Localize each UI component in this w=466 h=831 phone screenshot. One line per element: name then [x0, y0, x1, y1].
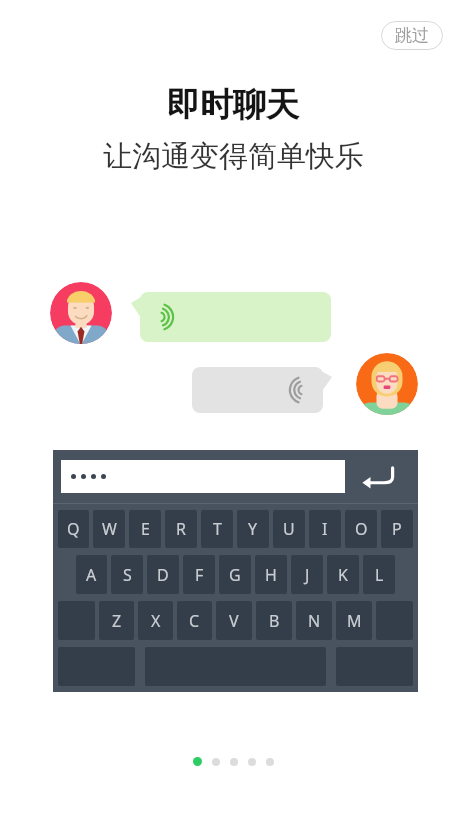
- button[interactable]: B: [256, 601, 292, 640]
- staticText: X: [151, 610, 161, 632]
- button[interactable]: X: [138, 601, 173, 640]
- staticText: A: [86, 564, 97, 586]
- button[interactable]: K: [327, 555, 359, 594]
- button[interactable]: D: [147, 555, 179, 594]
- button[interactable]: I: [309, 510, 341, 548]
- button[interactable]: S: [111, 555, 143, 594]
- button[interactable]: W: [93, 510, 125, 548]
- staticText: B: [269, 610, 280, 632]
- button[interactable]: C: [177, 601, 212, 640]
- button[interactable]: Z: [99, 601, 134, 640]
- staticText: W: [102, 518, 117, 540]
- button[interactable]: T: [201, 510, 233, 548]
- button[interactable]: L: [363, 555, 395, 594]
- button[interactable]: U: [273, 510, 305, 548]
- button[interactable]: [71, 460, 345, 493]
- button[interactable]: R: [165, 510, 197, 548]
- staticText: L: [375, 564, 384, 586]
- staticText: C: [189, 610, 200, 632]
- button[interactable]: G: [219, 555, 251, 594]
- staticText: 让沟通变得简单快乐: [103, 138, 364, 175]
- staticText: E: [141, 518, 150, 540]
- staticText: 跳过: [395, 25, 429, 46]
- button[interactable]: V: [216, 601, 252, 640]
- staticText: G: [229, 564, 241, 586]
- staticText: V: [229, 610, 239, 632]
- staticText: N: [308, 610, 321, 632]
- staticText: R: [176, 518, 186, 540]
- button[interactable]: A: [76, 555, 107, 594]
- staticText: K: [338, 564, 348, 586]
- staticText: J: [305, 564, 310, 586]
- staticText: Z: [112, 610, 122, 632]
- button[interactable]: H: [255, 555, 287, 594]
- button[interactable]: M: [336, 601, 372, 640]
- button[interactable]: P: [381, 510, 413, 548]
- button[interactable]: F: [183, 555, 215, 594]
- staticText: M: [347, 610, 362, 632]
- staticText: Y: [248, 518, 258, 540]
- button[interactable]: J: [291, 555, 323, 594]
- staticText: O: [355, 518, 368, 540]
- staticText: H: [265, 564, 277, 586]
- staticText: 即时聊天: [167, 84, 299, 126]
- button[interactable]: Send: [345, 450, 410, 503]
- staticText: Q: [67, 518, 80, 540]
- staticText: S: [123, 564, 132, 586]
- staticText: D: [157, 564, 169, 586]
- staticText: U: [283, 518, 295, 540]
- staticText: P: [392, 518, 402, 540]
- button[interactable]: N: [296, 601, 332, 640]
- staticText: F: [195, 564, 204, 586]
- button[interactable]: E: [129, 510, 161, 548]
- button[interactable]: O: [345, 510, 377, 548]
- staticText: T: [213, 518, 222, 540]
- button[interactable]: Y: [237, 510, 269, 548]
- staticText: I: [322, 518, 328, 540]
- button[interactable]: Q: [58, 510, 89, 548]
- button[interactable]: 跳过: [381, 21, 443, 50]
